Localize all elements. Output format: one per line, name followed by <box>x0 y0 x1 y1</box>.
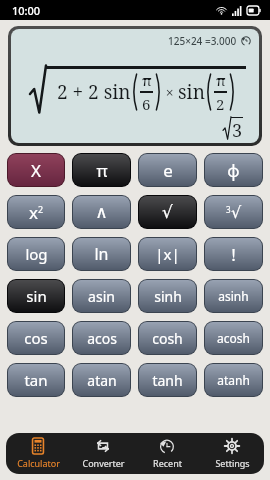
button[interactable]: tanh <box>139 364 196 396</box>
staticText: 2 <box>216 94 225 114</box>
staticText: π <box>142 70 152 90</box>
staticText: |x| <box>155 244 180 264</box>
staticText: X <box>31 159 41 182</box>
staticText: Recent <box>153 457 182 469</box>
staticText: x <box>29 201 38 224</box>
button[interactable]: ln <box>73 238 130 270</box>
button[interactable]: ∧ <box>73 196 130 228</box>
staticText: 2 <box>38 203 44 215</box>
button[interactable]: acosh <box>205 322 262 354</box>
button[interactable]: atan <box>73 364 130 396</box>
staticText: 3 <box>226 204 231 215</box>
staticText: 2 + 2 sin <box>57 79 131 105</box>
button[interactable]: 125×24 =3.000 <box>11 29 259 143</box>
button[interactable]: Recent <box>135 433 199 474</box>
staticText: φ <box>227 159 240 182</box>
staticText: log <box>25 244 48 264</box>
button[interactable]: sinh <box>139 280 196 312</box>
staticText: acosh <box>217 330 250 346</box>
button[interactable]: tan <box>8 364 64 396</box>
button[interactable]: atanh <box>205 364 262 396</box>
button[interactable]: Calculator <box>6 433 70 474</box>
button[interactable]: ! <box>205 238 262 270</box>
staticText: atan <box>87 371 117 390</box>
staticText: π <box>216 70 226 90</box>
button[interactable]: |x| <box>139 238 196 270</box>
staticText: asin <box>88 287 115 306</box>
staticText: acos <box>87 329 117 348</box>
button[interactable]: Settings <box>200 433 264 474</box>
staticText: √ <box>162 202 173 222</box>
button[interactable]: x <box>8 196 64 228</box>
button[interactable]: X <box>8 154 64 186</box>
staticText: 125×24 =3.000 <box>168 34 237 48</box>
button[interactable]: Converter <box>71 433 135 474</box>
staticText: 6 <box>142 94 151 114</box>
button[interactable]: φ <box>205 154 262 186</box>
button[interactable]: asinh <box>205 280 262 312</box>
button[interactable]: 3 <box>205 196 262 228</box>
staticText: sin <box>26 286 47 306</box>
button[interactable]: e <box>139 154 196 186</box>
staticText: π <box>96 159 108 182</box>
staticText: 3 <box>232 118 243 140</box>
staticText: cosh <box>152 329 183 348</box>
button[interactable]: log <box>8 238 64 270</box>
button[interactable]: √ <box>139 196 196 228</box>
staticText: ! <box>231 243 236 266</box>
staticText: 10:00 <box>12 3 41 18</box>
staticText: tanh <box>152 371 183 390</box>
staticText: × <box>162 83 178 102</box>
button[interactable]: cosh <box>139 322 196 354</box>
button[interactable]: asin <box>73 280 130 312</box>
staticText: cos <box>24 328 48 348</box>
button[interactable]: acos <box>73 322 130 354</box>
staticText: sinh <box>154 287 182 306</box>
staticText: asinh <box>218 288 249 304</box>
staticText: sin <box>178 79 205 105</box>
staticText: e <box>163 159 173 182</box>
staticText: ∧ <box>95 202 108 222</box>
staticText: Converter <box>82 457 125 469</box>
staticText: atanh <box>217 372 250 388</box>
staticText: Calculator <box>17 457 60 469</box>
staticText: tan <box>24 370 48 390</box>
button[interactable]: sin <box>8 280 64 312</box>
button[interactable]: cos <box>8 322 64 354</box>
staticText: √ <box>231 203 242 222</box>
staticText: Settings <box>215 457 250 469</box>
button[interactable]: π <box>73 154 130 186</box>
staticText: ln <box>94 243 109 265</box>
